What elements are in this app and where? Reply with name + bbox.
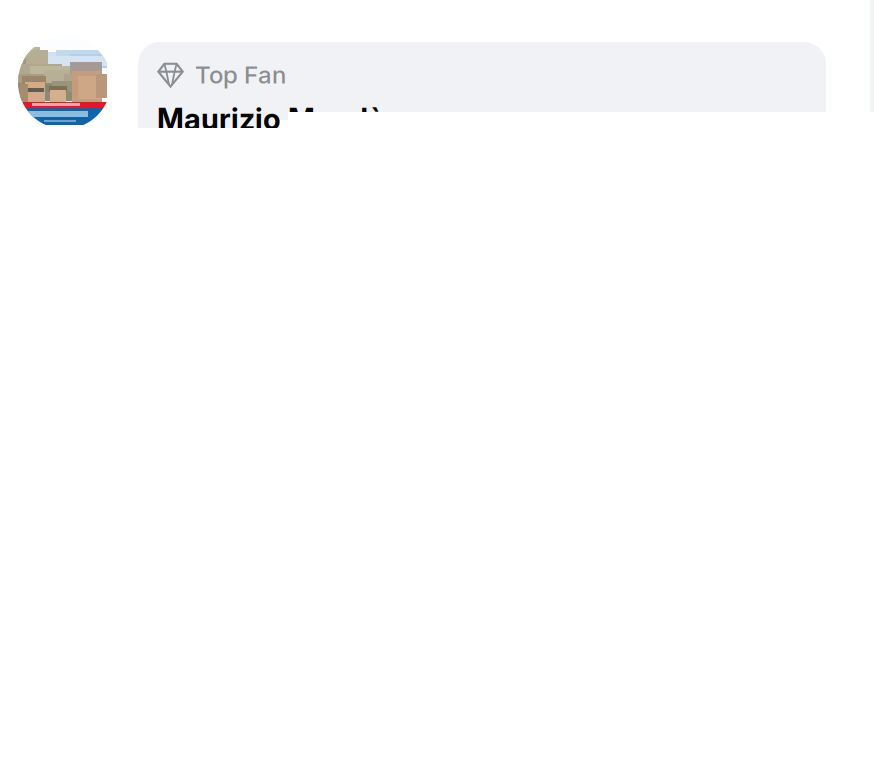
button[interactable]: Maurizio Mandò [157, 101, 386, 137]
button[interactable]: Maurizio Mandò profile photo [18, 36, 111, 129]
button[interactable]: Top Fan [138, 42, 826, 272]
button[interactable]: Maurizio Mandò profile photo [18, 36, 111, 129]
button[interactable]: Maurizio Mandò profile photo [18, 36, 111, 129]
staticText: Maurizio Mandò [157, 101, 386, 137]
button[interactable]: Maurizio Mandò [157, 101, 386, 137]
button[interactable]: Top Fan [138, 42, 826, 272]
staticText: Maurizio Mandò [157, 101, 386, 137]
button[interactable]: Maurizio Mandò [157, 101, 386, 137]
staticText: Top Fan [195, 60, 286, 89]
staticText: Top Fan [195, 60, 286, 89]
button[interactable]: Top Fan [157, 60, 286, 89]
staticText: Top Fan [195, 60, 286, 89]
button[interactable]: Top Fan [157, 60, 286, 89]
staticText: Maurizio Mandò [157, 101, 386, 137]
button[interactable]: Top Fan [138, 42, 826, 272]
button[interactable]: Top Fan [157, 60, 286, 89]
